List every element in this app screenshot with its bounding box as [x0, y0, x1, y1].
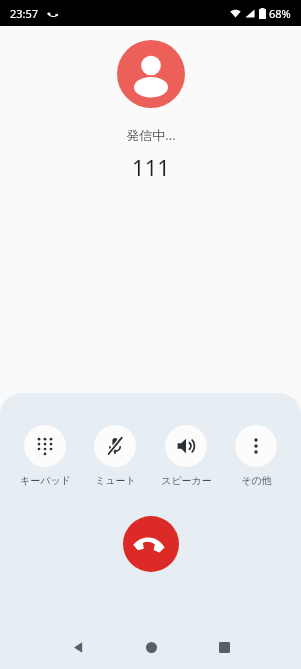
button[interactable]: ミュート [82, 425, 148, 487]
button[interactable]: キーパッド [12, 425, 78, 487]
staticText: 68% [269, 6, 291, 21]
staticText: 23:57 [10, 6, 39, 21]
button[interactable]: Recents [202, 625, 246, 669]
button[interactable]: Back [56, 625, 100, 669]
staticText: ミュート [95, 474, 136, 487]
staticText: キーパッド [20, 474, 71, 487]
button[interactable]: その他 [223, 425, 289, 487]
staticText: スピーカー [161, 474, 212, 487]
button[interactable]: スピーカー [153, 425, 219, 487]
staticText: 111 [132, 152, 170, 182]
staticText: 発信中... [126, 126, 176, 144]
button[interactable]: End call [123, 516, 179, 572]
staticText: その他 [241, 474, 272, 487]
button[interactable]: Home [129, 625, 173, 669]
